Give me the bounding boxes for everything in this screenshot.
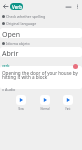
button[interactable]: Abrir <box>0 47 82 57</box>
button[interactable]: Check whether spelling <box>0 13 82 20</box>
staticText: Abrir <box>2 49 19 57</box>
staticText: verb <box>2 63 10 68</box>
button[interactable]: Original language <box>0 20 82 27</box>
button[interactable]: Collapse <box>63 1 73 11</box>
staticText: Audio <box>5 87 16 92</box>
staticText: Slow <box>16 107 26 111</box>
staticText: Fast <box>63 107 73 111</box>
button[interactable]: Favorite <box>73 64 78 69</box>
button[interactable]: Play Slow <box>16 95 26 111</box>
button[interactable]: Play Normal <box>40 95 50 111</box>
button[interactable]: Back <box>0 1 10 11</box>
button[interactable]: Verb <box>10 3 23 10</box>
button[interactable]: Idioma objeto <box>0 40 82 47</box>
button[interactable]: Open <box>0 28 82 38</box>
staticText: Original language <box>6 21 37 26</box>
staticText: Idioma objeto <box>6 41 30 46</box>
button[interactable]: More options <box>72 1 82 11</box>
staticText: Opening the door of your house by hittin… <box>2 70 81 80</box>
staticText: Normal <box>40 107 50 111</box>
staticText: Open <box>2 30 21 38</box>
button[interactable]: Play Fast <box>63 95 73 111</box>
staticText: Check whether spelling <box>6 14 46 19</box>
staticText: Verb <box>12 4 22 10</box>
